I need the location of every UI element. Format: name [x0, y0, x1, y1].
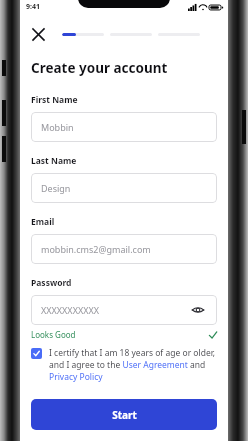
- button[interactable]: Start: [31, 399, 217, 430]
- staticText: I certify that I am 18 years of age or o…: [49, 347, 217, 383]
- staticText: Looks Good: [31, 329, 209, 340]
- staticText: mobbin.cms2@gmail.com: [41, 243, 207, 255]
- staticText: Design: [41, 182, 207, 194]
- button[interactable]: Show password: [189, 301, 207, 319]
- staticText: 9:41: [26, 2, 40, 12]
- button[interactable]: Mobbin: [31, 112, 217, 142]
- staticText: Email: [31, 216, 55, 228]
- button[interactable]: mobbin.cms2@gmail.com: [31, 234, 217, 264]
- button[interactable]: I certify that I am 18 years of age or o…: [31, 347, 217, 383]
- button[interactable]: Design: [31, 173, 217, 203]
- staticText: Start: [112, 408, 137, 422]
- button[interactable]: XXXXXXXXXXX: [31, 295, 217, 325]
- staticText: Mobbin: [41, 121, 207, 133]
- staticText: Password: [31, 277, 72, 289]
- button[interactable]: Close: [28, 24, 48, 44]
- staticText: Last Name: [31, 155, 77, 167]
- staticText: XXXXXXXXXXX: [41, 304, 189, 316]
- staticText: First Name: [31, 94, 78, 106]
- staticText: Create your account: [31, 59, 168, 77]
